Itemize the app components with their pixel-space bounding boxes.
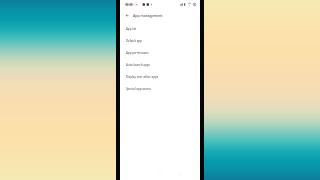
button[interactable]: Special app access	[120, 83, 200, 95]
button[interactable]: Default app	[120, 35, 200, 47]
staticText: Default app	[126, 39, 142, 43]
button[interactable]: Display over other apps	[120, 71, 200, 83]
button[interactable]: App list	[120, 23, 200, 35]
button[interactable]: Back	[120, 10, 200, 20]
staticText: App list	[126, 27, 137, 31]
button[interactable]: Auto-launch apps	[120, 59, 200, 71]
staticText: Auto-launch apps	[126, 63, 150, 67]
button[interactable]: Back	[120, 10, 133, 20]
staticText: App permissions	[126, 51, 149, 55]
button[interactable]: App permissions	[120, 47, 200, 59]
staticText: Special app access	[126, 87, 151, 91]
staticText: App management	[133, 13, 163, 18]
staticText: Display over other apps	[126, 75, 159, 79]
